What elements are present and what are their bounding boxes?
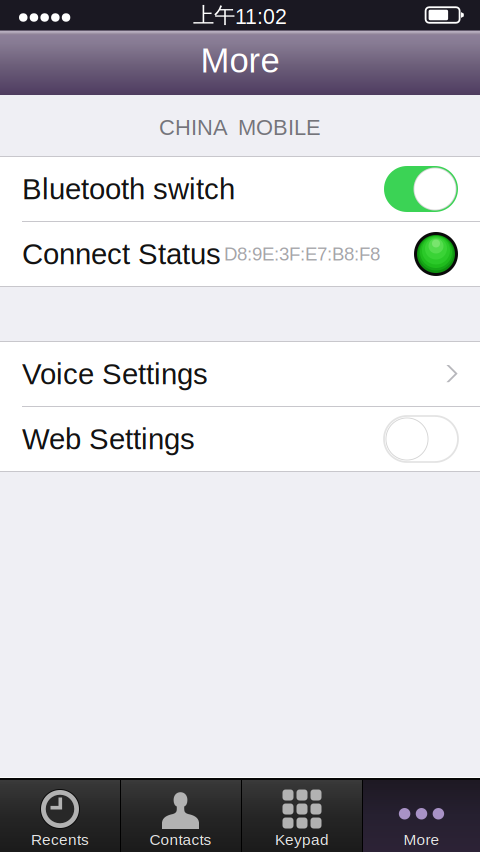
staticText: More [403, 831, 439, 848]
staticText: Connect Status [22, 238, 221, 270]
button[interactable]: Voice Settings [0, 342, 480, 406]
staticText: 上午11:02 [193, 2, 287, 29]
button[interactable]: Contacts [120, 780, 241, 852]
staticText: D8:9E:3F:E7:B8:F8 [224, 244, 380, 264]
staticText: Recents [31, 831, 89, 848]
staticText: CHINA MOBILE [159, 115, 321, 140]
staticText: Voice Settings [22, 358, 208, 390]
staticText: More [200, 41, 279, 80]
staticText: Contacts [149, 831, 211, 848]
staticText: Keypad [275, 831, 329, 848]
button[interactable]: Recents [0, 780, 120, 852]
button[interactable]: Connect Status [0, 222, 480, 286]
button[interactable]: Bluetooth switch [0, 157, 480, 221]
button[interactable]: More [363, 780, 480, 852]
button[interactable]: Web Settings [0, 407, 480, 471]
staticText: Bluetooth switch [22, 173, 235, 205]
staticText: Web Settings [22, 423, 195, 455]
button[interactable]: Keypad [241, 780, 363, 852]
